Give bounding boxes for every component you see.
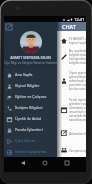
button[interactable]: Ana Sayfa xyxy=(4,69,57,80)
button[interactable]: Open navigation drawer xyxy=(5,23,12,30)
button[interactable]: Üyelik ile Aidat xyxy=(4,113,57,124)
staticText: Çıkış İşlemi xyxy=(15,138,35,143)
button[interactable]: Kişisel Bilgiler xyxy=(4,80,57,91)
staticText: 12:41 xyxy=(74,17,85,22)
staticText: AHMET SERTKAYA SELEN xyxy=(10,55,51,60)
staticText: Eğitim ve Çalışma xyxy=(15,94,47,99)
staticText: Kişisel Bilgiler xyxy=(15,83,40,88)
staticText: Bu sayfada bilgilerinizi fotoğrafınız bi… xyxy=(69,48,86,65)
staticText: Fenti üyesi gönderi yap olmadan e onumlu… xyxy=(69,97,86,122)
staticText: Parola İşlemleri xyxy=(15,127,43,132)
staticText: Üyelik ile Aidat xyxy=(15,116,42,121)
staticText: CHATBOT u kişisel sayf xyxy=(69,36,86,45)
button[interactable]: İletişim Bilgileri xyxy=(4,102,57,113)
button[interactable]: Sistem Uygulama xyxy=(4,146,57,157)
button[interactable]: Eğitim ve Çalışma xyxy=(4,91,57,102)
staticText: Anlamlar ko xyxy=(69,131,86,136)
button[interactable]: Back xyxy=(18,158,28,168)
button[interactable]: Çıkış İşlemi xyxy=(4,135,57,146)
button[interactable]: Recent apps xyxy=(62,158,72,168)
staticText: CHAT xyxy=(62,23,76,30)
button[interactable]: Parola İşlemleri xyxy=(4,124,57,135)
staticText: Tamşma üye xyxy=(69,148,86,153)
button[interactable]: Edit profile xyxy=(5,23,13,31)
staticText: Ana Sayfa xyxy=(15,72,33,77)
staticText: Üyen parola güncelleyeb adresinizi de po… xyxy=(69,70,86,91)
button[interactable]: Home xyxy=(40,158,50,168)
staticText: İletişim Bilgileri xyxy=(15,105,43,110)
staticText: Üye Bilgi ve İletişim Yönetim Sistemi xyxy=(4,61,57,65)
staticText: Sistem Uygulama xyxy=(15,149,47,154)
